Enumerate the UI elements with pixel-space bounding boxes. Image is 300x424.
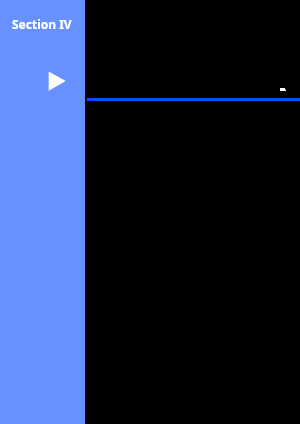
other: Marker bbox=[280, 88, 287, 92]
staticText: Section IV bbox=[12, 16, 72, 32]
button[interactable]: Play bbox=[44, 67, 70, 95]
button[interactable]: Section IV bbox=[0, 0, 85, 424]
